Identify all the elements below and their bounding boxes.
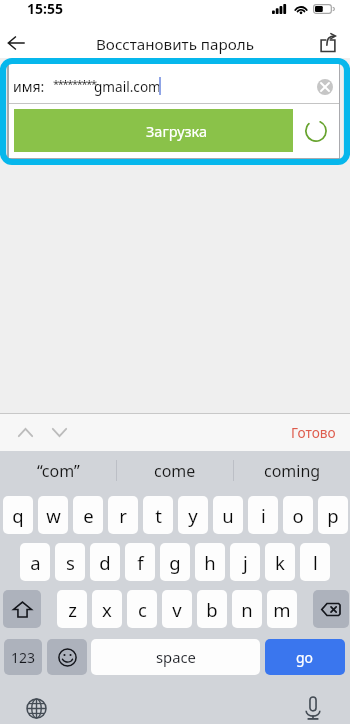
button[interactable]: b — [197, 590, 227, 628]
staticText: n — [241, 597, 253, 622]
button[interactable]: space — [91, 639, 260, 675]
staticText: space — [156, 647, 196, 667]
button[interactable]: Dictation — [300, 695, 326, 721]
staticText: l — [313, 550, 318, 575]
button[interactable]: w — [38, 496, 68, 534]
button[interactable]: come — [117, 451, 233, 490]
button[interactable]: k — [265, 543, 295, 581]
button[interactable]: x — [92, 590, 122, 628]
button[interactable]: n — [232, 590, 262, 628]
button[interactable]: Clear text — [317, 79, 333, 95]
button[interactable]: Готово — [287, 419, 340, 446]
button[interactable]: Share — [315, 30, 341, 56]
button[interactable]: q — [3, 496, 33, 534]
staticText: u — [222, 503, 234, 528]
staticText: k — [275, 550, 285, 575]
button[interactable]: u — [213, 496, 243, 534]
staticText: v — [172, 597, 182, 622]
button[interactable]: f — [125, 543, 155, 581]
button[interactable]: Backspace — [313, 590, 349, 628]
button[interactable]: s — [55, 543, 85, 581]
staticText: c — [138, 597, 147, 622]
button[interactable]: c — [127, 590, 157, 628]
button[interactable]: v — [162, 590, 192, 628]
button[interactable]: Previous field — [10, 417, 40, 447]
staticText: t — [155, 503, 162, 528]
staticText: i — [261, 503, 266, 528]
button[interactable]: h — [195, 543, 225, 581]
button[interactable]: i — [248, 496, 278, 534]
button[interactable]: l — [300, 543, 330, 581]
button[interactable]: e — [73, 496, 103, 534]
staticText: z — [68, 597, 77, 622]
button[interactable]: Загрузка — [14, 109, 293, 152]
staticText: y — [188, 503, 198, 528]
staticText: Восстановить пароль — [96, 34, 254, 55]
staticText: Загрузка — [146, 121, 208, 141]
button[interactable]: o — [283, 496, 313, 534]
staticText: m — [273, 597, 291, 622]
staticText: b — [206, 597, 218, 622]
button[interactable]: m — [267, 590, 297, 628]
staticText: x — [102, 597, 112, 622]
button[interactable]: a — [20, 543, 50, 581]
button[interactable]: “com” — [0, 451, 116, 490]
button[interactable]: r — [108, 496, 138, 534]
button[interactable]: Change keyboard language — [23, 695, 49, 721]
button[interactable]: g — [160, 543, 190, 581]
button[interactable]: coming — [234, 451, 350, 490]
staticText: come — [154, 460, 196, 482]
staticText: имя: — [13, 77, 45, 96]
staticText: r — [119, 503, 127, 528]
staticText: “com” — [37, 460, 80, 482]
staticText: d — [99, 550, 111, 575]
staticText: a — [30, 550, 41, 575]
staticText: ********* — [53, 76, 96, 91]
button[interactable]: Back — [2, 29, 30, 57]
staticText: e — [83, 503, 94, 528]
staticText: j — [243, 550, 248, 575]
staticText: s — [66, 550, 75, 575]
staticText: q — [12, 503, 24, 528]
button[interactable]: d — [90, 543, 120, 581]
button[interactable]: 123 — [4, 639, 42, 675]
button[interactable]: Next field — [44, 417, 74, 447]
staticText: f — [137, 550, 144, 575]
button[interactable]: j — [230, 543, 260, 581]
button[interactable]: t — [143, 496, 173, 534]
staticText: Готово — [291, 423, 336, 442]
staticText: p — [327, 503, 339, 528]
staticText: 123 — [11, 648, 36, 667]
staticText: g — [169, 550, 181, 575]
staticText: 15:55 — [27, 0, 63, 18]
button[interactable]: y — [178, 496, 208, 534]
staticText: o — [292, 503, 304, 528]
staticText: gmail.com — [94, 77, 161, 96]
button[interactable]: Shift — [3, 590, 41, 628]
button[interactable]: z — [57, 590, 87, 628]
staticText: coming — [264, 460, 321, 482]
staticText: w — [46, 503, 61, 528]
button[interactable]: p — [318, 496, 348, 534]
staticText: go — [296, 648, 314, 667]
button[interactable]: имя: — [9, 64, 339, 103]
button[interactable]: Emoji — [47, 639, 87, 675]
button[interactable]: go — [265, 639, 345, 675]
staticText: h — [204, 550, 216, 575]
